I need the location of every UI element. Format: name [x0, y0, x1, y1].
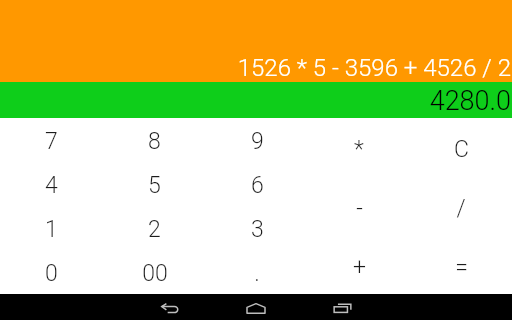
staticText: / [456, 195, 466, 222]
staticText: 8 [148, 128, 161, 155]
button[interactable]: 0 [0, 250, 103, 294]
staticText: C [454, 136, 469, 163]
staticText: + [353, 254, 366, 281]
button[interactable]: 4 [0, 162, 103, 206]
button[interactable]: = [410, 235, 512, 294]
staticText: 00 [142, 260, 168, 287]
staticText: 6 [251, 172, 264, 199]
button[interactable]: / [410, 176, 512, 235]
button[interactable]: 6 [206, 162, 308, 206]
button[interactable]: + [308, 235, 410, 294]
button[interactable]: 5 [103, 162, 206, 206]
button[interactable]: - [308, 176, 410, 235]
button[interactable]: Back [127, 294, 213, 320]
staticText: 5 [148, 172, 161, 199]
staticText: 9 [251, 128, 264, 155]
staticText: 1526 * 5 - 3596 + 4526 / 2 [237, 54, 511, 82]
staticText: 7 [45, 128, 58, 155]
button[interactable]: . [206, 250, 308, 294]
staticText: 2 [148, 216, 161, 243]
button[interactable]: 8 [103, 118, 206, 162]
staticText: 1 [45, 216, 58, 243]
staticText: 4 [45, 172, 58, 199]
staticText: . [254, 260, 260, 287]
button[interactable]: * [308, 118, 410, 176]
button[interactable]: 2 [103, 206, 206, 250]
button[interactable]: 3 [206, 206, 308, 250]
staticText: 3 [251, 216, 264, 243]
button[interactable]: Recent apps [299, 294, 385, 320]
button[interactable]: Home [213, 294, 299, 320]
button[interactable]: 7 [0, 118, 103, 162]
staticText: - [356, 195, 363, 222]
button[interactable]: 9 [206, 118, 308, 162]
staticText: * [354, 136, 364, 163]
button[interactable]: 1 [0, 206, 103, 250]
staticText: = [455, 254, 468, 281]
button[interactable]: 00 [103, 250, 206, 294]
button[interactable]: C [410, 118, 512, 176]
staticText: 0 [45, 260, 58, 287]
staticText: 4280.0 [429, 85, 511, 117]
